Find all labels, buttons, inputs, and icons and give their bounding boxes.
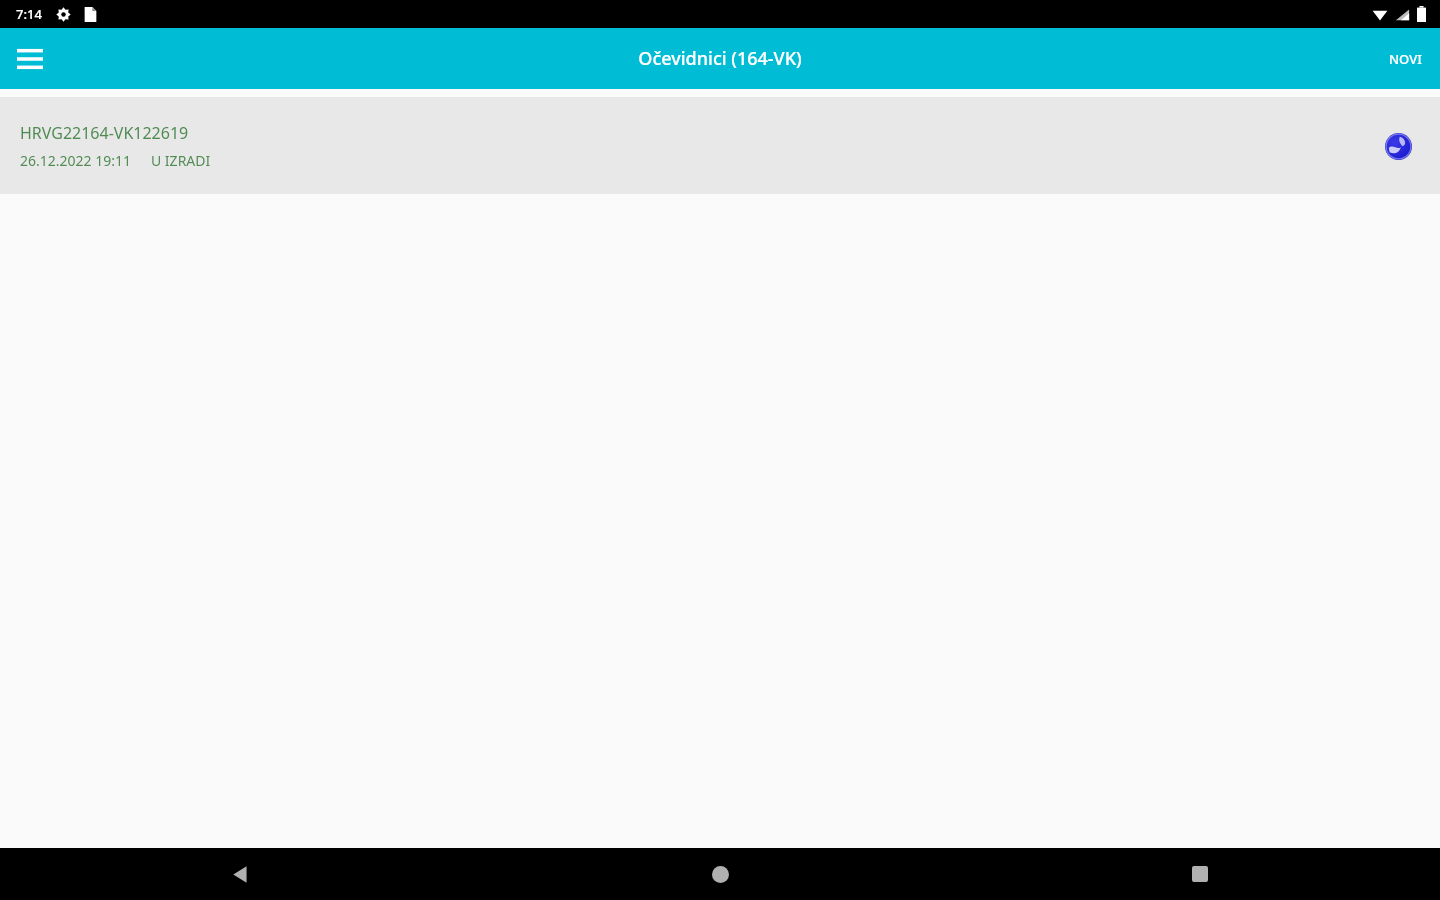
staticText: NOVI: [1389, 50, 1422, 68]
staticText: HRVG22164-VK122619: [20, 122, 189, 144]
button[interactable]: Sync record to server: [1376, 124, 1420, 168]
button[interactable]: Recent apps: [960, 848, 1440, 900]
staticText: U IZRADI: [151, 151, 211, 170]
button[interactable]: Open navigation menu: [4, 33, 56, 85]
button[interactable]: Back: [0, 848, 480, 900]
button[interactable]: HRVG22164-VK122619: [0, 97, 1440, 194]
button[interactable]: NOVI: [1371, 28, 1440, 89]
button[interactable]: Home: [480, 848, 960, 900]
staticText: Očevidnici (164-VK): [638, 46, 802, 71]
staticText: 26.12.2022 19:11: [20, 151, 131, 170]
staticText: 7:14: [16, 5, 42, 23]
